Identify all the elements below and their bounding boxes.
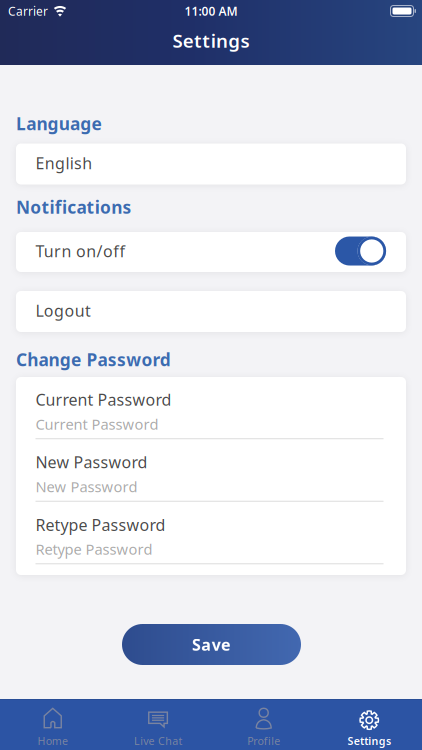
staticText: 11:00 AM	[184, 3, 237, 19]
staticText: New Password	[35, 477, 137, 496]
button[interactable]: Logout	[16, 291, 406, 332]
staticText: Logout	[35, 300, 91, 321]
secureTextField[interactable]: Current Password	[35, 414, 383, 439]
button[interactable]: Settings	[316, 700, 422, 749]
staticText: Settings	[172, 28, 250, 53]
staticText: Retype Password	[35, 539, 152, 559]
staticText: Settings	[347, 734, 391, 748]
staticText: Current Password	[35, 414, 158, 434]
staticText: Live Chat	[134, 734, 182, 748]
secureTextField[interactable]: New Password	[35, 477, 383, 502]
button[interactable]: Profile	[211, 700, 316, 749]
button[interactable]: Turn notifications on/off	[335, 236, 386, 265]
button[interactable]: English	[16, 143, 406, 184]
staticText: New Password	[35, 451, 147, 473]
staticText: Save	[192, 634, 231, 655]
staticText: Turn on/off	[35, 240, 125, 262]
staticText: Home	[37, 734, 68, 748]
staticText: Language	[16, 112, 101, 135]
button[interactable]: Live Chat	[105, 700, 211, 749]
staticText: Notifications	[16, 195, 131, 218]
staticText: Change Password	[16, 348, 171, 371]
staticText: Carrier	[8, 3, 48, 19]
staticText: Profile	[247, 734, 280, 748]
staticText: Retype Password	[35, 514, 165, 535]
button[interactable]: Save	[122, 624, 301, 665]
button[interactable]: Home	[0, 700, 105, 749]
staticText: Current Password	[35, 389, 171, 410]
staticText: English	[35, 152, 92, 174]
secureTextField[interactable]: Retype Password	[35, 539, 383, 564]
